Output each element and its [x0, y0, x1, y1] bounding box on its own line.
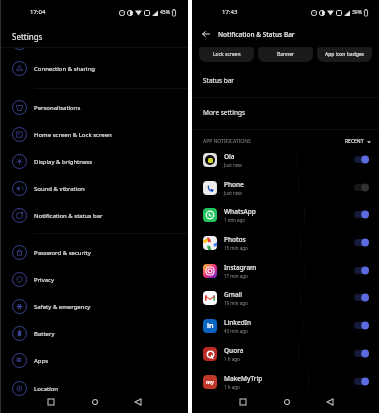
button[interactable]	[354, 183, 369, 192]
button[interactable]: Connection & sharing	[0, 55, 188, 82]
staticText: 17 min ago	[224, 273, 248, 279]
button[interactable]: Home screen & Lock screen	[0, 121, 188, 148]
button[interactable]: Battery	[0, 320, 188, 347]
staticText: Connection & sharing	[34, 65, 96, 73]
staticText: WhatsApp	[224, 207, 256, 216]
staticText: Lock screen	[213, 51, 241, 58]
staticText: 1 min ago	[224, 217, 246, 223]
staticText: 1 h ago	[224, 356, 240, 362]
staticText: Privacy	[34, 276, 55, 284]
button[interactable]	[354, 155, 369, 164]
staticText: Instagram	[224, 263, 257, 272]
staticText: 15 min ago	[224, 245, 248, 251]
button[interactable]	[354, 238, 369, 247]
staticText: 17:04	[30, 8, 46, 16]
staticText: Location	[34, 385, 59, 393]
button[interactable]: Back	[130, 394, 146, 410]
button[interactable]: Phone	[192, 174, 379, 201]
button[interactable]: WhatsApp	[192, 201, 379, 228]
staticText: 17:43	[222, 8, 238, 16]
staticText: 19 min ago	[224, 300, 248, 306]
staticText: APP NOTIFICATIONS	[203, 138, 251, 145]
button[interactable]: Notification & status bar	[0, 202, 188, 229]
button[interactable]: Recents	[235, 394, 251, 410]
staticText: Personalisations	[34, 104, 81, 112]
staticText: Photos	[224, 235, 246, 244]
staticText: Phone	[224, 180, 244, 189]
staticText: Status bar	[203, 76, 235, 85]
button[interactable]: App icon badges	[317, 47, 372, 62]
button[interactable]: Back	[200, 28, 212, 40]
button[interactable]: Safety & emergency	[0, 293, 188, 320]
button[interactable]: Privacy	[0, 266, 188, 293]
staticText: Quora	[224, 346, 244, 355]
button[interactable]: Location	[0, 375, 188, 402]
button[interactable]	[354, 293, 369, 302]
button[interactable]: Gmail	[192, 284, 379, 311]
button[interactable]: Quora	[192, 340, 379, 367]
staticText: Ola	[224, 152, 235, 161]
button[interactable]: Apps	[0, 347, 188, 374]
button[interactable]: Ola	[192, 146, 379, 173]
staticText: Password & security	[34, 249, 91, 257]
button[interactable]: Recents	[43, 394, 59, 410]
staticText: in	[207, 321, 214, 331]
staticText: Just now	[224, 190, 242, 196]
staticText: Apps	[34, 357, 49, 365]
staticText: my	[206, 379, 214, 386]
button[interactable]: Home	[279, 394, 295, 410]
button[interactable]: my	[192, 368, 379, 395]
button[interactable]: Photos	[192, 229, 379, 256]
staticText: Battery	[34, 330, 55, 338]
staticText: 43 min ago	[224, 328, 248, 334]
staticText: Banner	[277, 51, 295, 58]
staticText: MakeMyTrip	[224, 374, 263, 383]
staticText: Gmail	[224, 290, 243, 299]
button[interactable]: Password & security	[0, 239, 188, 266]
staticText: Settings	[12, 31, 43, 42]
staticText: LinkedIn	[224, 318, 252, 327]
button[interactable]	[354, 377, 369, 386]
staticText: 39%	[352, 9, 362, 16]
button[interactable]: Back	[322, 394, 338, 410]
staticText: Home screen & Lock screen	[34, 131, 112, 139]
button[interactable]: Lock screen	[199, 47, 254, 62]
button[interactable]	[354, 321, 369, 330]
button[interactable]: in	[192, 312, 379, 339]
button[interactable]: Display & brightness	[0, 148, 188, 175]
staticText: Display & brightness	[34, 158, 93, 166]
staticText: Sound & vibration	[34, 185, 85, 193]
staticText: Notification & Status Bar	[218, 30, 295, 39]
staticText: Notification & status bar	[34, 212, 103, 220]
staticText: More settings	[203, 108, 246, 117]
button[interactable]	[354, 210, 369, 219]
button[interactable]: Home	[87, 394, 103, 410]
button[interactable]: Personalisations	[0, 94, 188, 121]
staticText: Just now	[224, 162, 242, 168]
staticText: RECENT	[345, 138, 364, 145]
button[interactable]	[354, 349, 369, 358]
staticText: 1 h ago	[224, 384, 240, 390]
button[interactable]: Banner	[258, 47, 313, 62]
staticText: App icon badges	[325, 51, 364, 58]
staticText: 45%	[160, 9, 170, 16]
button[interactable]: Sound & vibration	[0, 175, 188, 202]
staticText: Safety & emergency	[34, 303, 91, 311]
button[interactable]: Instagram	[192, 257, 379, 284]
button[interactable]	[354, 266, 369, 275]
button[interactable]: RECENT	[345, 138, 371, 145]
